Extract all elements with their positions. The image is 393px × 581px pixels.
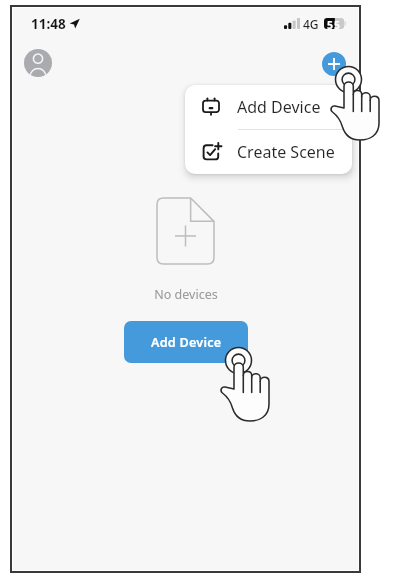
button[interactable]: Add Device [124, 321, 248, 363]
button[interactable]: Profile [24, 49, 52, 77]
staticText: Add Device [237, 96, 321, 118]
staticText: 11:48 [31, 15, 66, 33]
staticText: 4G [303, 16, 319, 32]
staticText: 5 [334, 18, 341, 29]
staticText: Add Device [151, 334, 222, 351]
staticText: No devices [154, 286, 218, 303]
button[interactable]: Create Scene [185, 130, 352, 174]
button[interactable]: Add Device [185, 85, 352, 129]
staticText: Create Scene [237, 141, 335, 163]
staticText: 5 [327, 18, 334, 29]
button[interactable]: Add [322, 52, 346, 76]
